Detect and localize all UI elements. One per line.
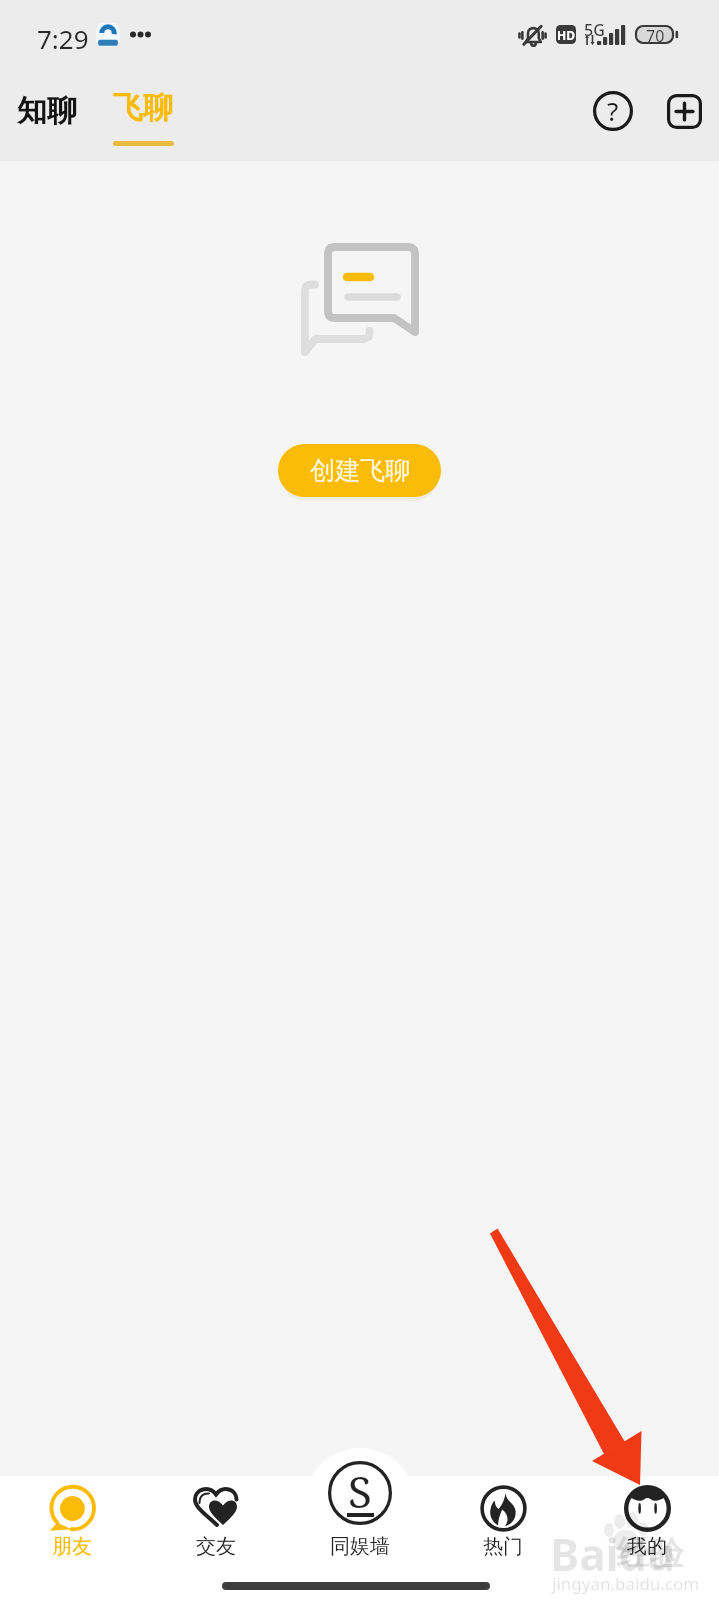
button[interactable]: 飞聊 (96, 82, 190, 150)
staticText: HD (557, 27, 575, 43)
staticText: 70 (646, 25, 665, 44)
staticText: jingyan.baidu.com (552, 1572, 700, 1595)
staticText: ? (607, 93, 619, 128)
button[interactable]: Help (589, 87, 637, 135)
staticText: 飞聊 (113, 89, 173, 127)
staticText: 7:29 (37, 21, 89, 56)
button[interactable]: 交友 (144, 1476, 288, 1600)
button[interactable]: 知聊 (0, 82, 94, 140)
staticText: 知聊 (17, 92, 77, 130)
button[interactable]: S (288, 1455, 431, 1565)
staticText: 经验 (616, 1532, 684, 1575)
staticText: 热门 (483, 1534, 523, 1559)
staticText: 交友 (196, 1534, 236, 1559)
staticText: 我的 (627, 1534, 667, 1559)
button[interactable]: 热门 (431, 1476, 575, 1600)
staticText: Baidu (550, 1524, 676, 1584)
button[interactable]: 朋友 (0, 1476, 144, 1600)
button[interactable]: 我的 (575, 1476, 719, 1600)
staticText: 同娱墙 (330, 1534, 390, 1559)
staticText: 朋友 (52, 1534, 92, 1559)
button[interactable]: 创建飞聊 (278, 444, 441, 497)
staticText: 创建飞聊 (310, 455, 410, 486)
button[interactable]: Add (661, 88, 707, 134)
staticText: S (348, 1461, 372, 1521)
staticText: 5G (584, 19, 605, 41)
